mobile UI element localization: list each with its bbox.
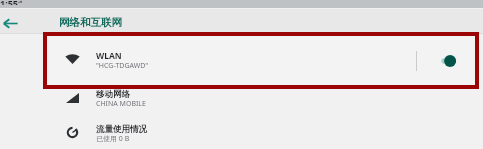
button[interactable]: 移动网络 [42, 84, 473, 115]
staticText: 网络和互联网 [59, 16, 122, 29]
staticText: CHINA MOBILE [96, 99, 146, 109]
staticText: 流量使用情况 [96, 124, 147, 135]
staticText: WLAN [96, 50, 122, 62]
button[interactable]: 流量使用情况 [42, 119, 473, 149]
button[interactable]: Back [0, 13, 20, 33]
staticText: 移动网络 [96, 89, 130, 100]
staticText: 已使用 0 B [96, 134, 130, 144]
staticText: "HCG-TDGAWD" [96, 61, 149, 71]
staticText: 1:55 [0, 0, 18, 5]
button[interactable]: WLAN on/off [435, 54, 456, 68]
button[interactable]: WLAN [42, 45, 473, 76]
